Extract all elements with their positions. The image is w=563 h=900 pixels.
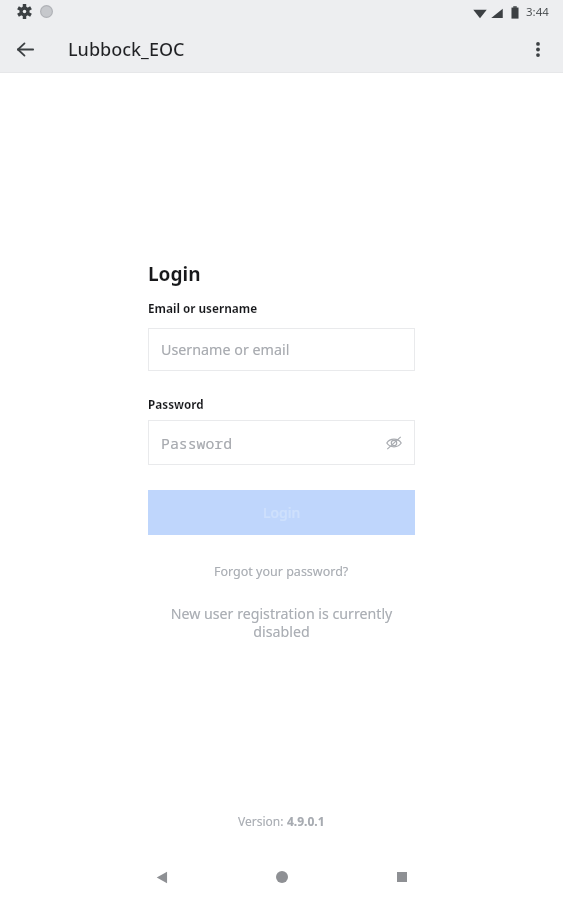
button[interactable]: Back (138, 853, 186, 900)
staticText: Password (161, 433, 233, 453)
button[interactable]: Forgot your password? (148, 563, 415, 580)
staticText: Lubbock_EOC (68, 37, 185, 62)
button[interactable]: Password (148, 420, 415, 465)
button[interactable]: Username or email (148, 328, 415, 371)
button[interactable]: More options (516, 27, 560, 71)
staticText: Forgot your password? (214, 563, 349, 580)
staticText: Login (263, 503, 301, 522)
staticText: Password (148, 396, 204, 412)
staticText: 3:44 (526, 4, 549, 20)
staticText: Username or email (161, 340, 290, 359)
button[interactable]: Home (258, 853, 306, 900)
button[interactable]: Show password (384, 433, 404, 453)
staticText: Login (148, 261, 201, 287)
staticText: New user registration is currently disab… (148, 604, 415, 641)
button[interactable]: Recent apps (378, 853, 426, 900)
staticText: 4.9.0.1 (287, 813, 325, 829)
button[interactable]: Back (3, 27, 47, 71)
staticText: Version: (238, 813, 287, 829)
staticText: Email or username (148, 300, 258, 316)
